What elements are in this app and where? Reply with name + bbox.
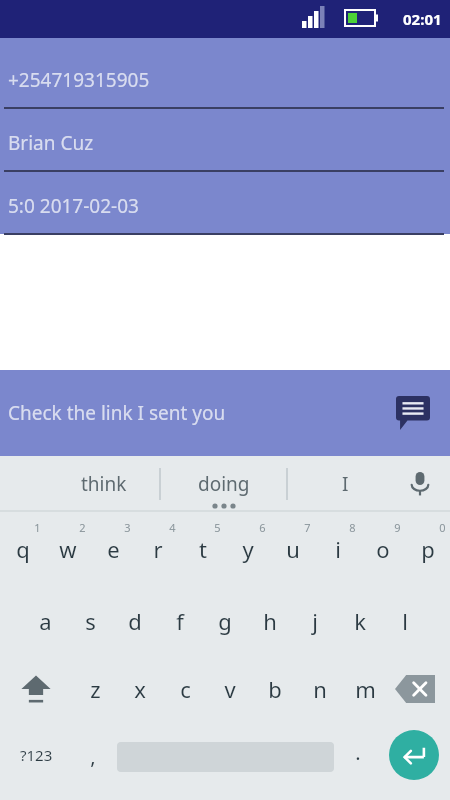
button[interactable]: v [204, 669, 256, 709]
staticText: +254719315905 [8, 67, 150, 93]
button[interactable]: , [67, 736, 119, 776]
staticText: u [286, 534, 300, 564]
staticText: f [176, 606, 184, 636]
button[interactable]: l [379, 601, 431, 641]
staticText: k [354, 606, 366, 636]
staticText: o [376, 534, 390, 564]
staticText: 0 [439, 520, 446, 535]
staticText: think [81, 471, 127, 497]
button[interactable]: g [199, 601, 251, 641]
button[interactable]: f [154, 601, 206, 641]
button[interactable]: Backspace [388, 664, 442, 714]
staticText: a [39, 606, 52, 636]
staticText: Brian Cuz [8, 130, 94, 156]
button[interactable]: Brian Cuz [0, 121, 450, 172]
staticText: d [128, 606, 142, 636]
staticText: t [199, 534, 207, 564]
button[interactable]: 3 [101, 507, 153, 547]
button[interactable]: n [294, 669, 346, 709]
staticText: I [342, 471, 349, 497]
button[interactable]: x [114, 669, 166, 709]
staticText: 5 [214, 520, 221, 535]
button[interactable]: doing [174, 456, 274, 512]
staticText: 9 [394, 520, 401, 535]
button[interactable]: 1 [11, 507, 63, 547]
button[interactable]: j [289, 601, 341, 641]
staticText: n [313, 674, 327, 704]
button[interactable]: 5:0 2017-02-03 [0, 184, 450, 235]
staticText: h [263, 606, 277, 636]
staticText: 4 [169, 520, 176, 535]
staticText: r [153, 534, 163, 564]
staticText: . [355, 739, 361, 766]
staticText: 02:01 [403, 9, 442, 29]
button[interactable]: ?123 [8, 731, 64, 779]
staticText: 2 [79, 520, 86, 535]
button[interactable]: z [69, 669, 121, 709]
button[interactable]: 7 [281, 507, 333, 547]
staticText: y [242, 534, 254, 564]
button[interactable]: 2 [56, 507, 108, 547]
button[interactable]: +254719315905 [0, 58, 450, 109]
button[interactable]: Send message [390, 390, 436, 436]
staticText: p [421, 534, 435, 564]
staticText: i [335, 534, 341, 564]
staticText: 1 [34, 520, 41, 535]
button[interactable]: h [244, 601, 296, 641]
button[interactable]: i [312, 529, 364, 569]
button[interactable]: t [177, 529, 229, 569]
button[interactable]: Shift [10, 664, 62, 714]
button[interactable]: Voice input [398, 462, 442, 506]
staticText: 5:0 2017-02-03 [8, 193, 139, 219]
button[interactable]: 9 [371, 507, 423, 547]
staticText: c [180, 674, 191, 704]
button[interactable]: p [402, 529, 450, 569]
staticText: Check the link I sent you [8, 400, 226, 426]
button[interactable]: k [334, 601, 386, 641]
staticText: g [218, 606, 232, 636]
staticText: 3 [124, 520, 131, 535]
button[interactable]: y [222, 529, 274, 569]
staticText: b [268, 674, 282, 704]
button[interactable]: c [159, 669, 211, 709]
button[interactable]: . [332, 732, 384, 772]
staticText: z [90, 674, 101, 704]
staticText: m [355, 674, 376, 704]
button[interactable]: d [109, 601, 161, 641]
staticText: doing [198, 471, 250, 497]
button[interactable]: o [357, 529, 409, 569]
button[interactable]: a [19, 601, 71, 641]
button[interactable]: I [295, 456, 395, 512]
button[interactable]: q [0, 529, 49, 569]
staticText: l [402, 606, 408, 636]
button[interactable]: s [64, 601, 116, 641]
button[interactable]: u [267, 529, 319, 569]
staticText: 7 [304, 520, 311, 535]
button[interactable]: e [87, 529, 139, 569]
button[interactable]: 6 [236, 507, 288, 547]
staticText: e [107, 534, 120, 564]
staticText: j [312, 606, 318, 636]
button[interactable]: think [54, 456, 154, 512]
button[interactable]: m [339, 669, 391, 709]
button[interactable]: b [249, 669, 301, 709]
staticText: s [85, 606, 96, 636]
button[interactable]: 8 [326, 507, 378, 547]
staticText: 6 [259, 520, 266, 535]
staticText: 8 [349, 520, 356, 535]
button[interactable]: 4 [146, 507, 198, 547]
button[interactable]: 5 [191, 507, 243, 547]
button[interactable]: r [132, 529, 184, 569]
button[interactable]: w [42, 529, 94, 569]
button[interactable]: Enter [389, 730, 439, 780]
staticText: q [16, 534, 30, 564]
staticText: w [59, 534, 77, 564]
staticText: x [134, 674, 146, 704]
staticText: v [224, 674, 236, 704]
staticText: ?123 [20, 745, 53, 765]
button[interactable]: 0 [416, 507, 450, 547]
staticText: , [90, 743, 96, 770]
